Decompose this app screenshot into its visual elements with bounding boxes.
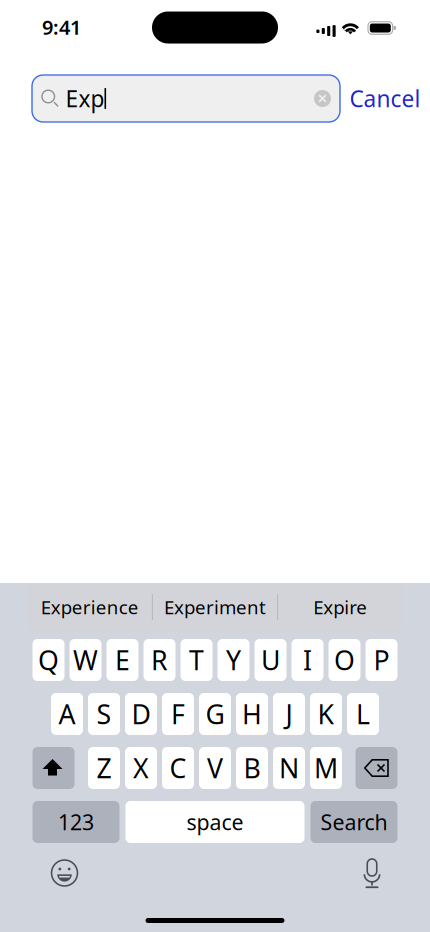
button[interactable]: E <box>106 639 138 681</box>
button[interactable]: M <box>310 747 342 789</box>
button[interactable]: K <box>310 693 342 735</box>
staticText: H <box>242 696 262 732</box>
staticText: D <box>131 696 150 732</box>
button[interactable]: L <box>347 693 379 735</box>
button[interactable]: Experience <box>28 584 152 630</box>
staticText: Experiment <box>164 595 266 619</box>
button[interactable]: U <box>254 639 286 681</box>
button[interactable]: D <box>125 693 157 735</box>
button[interactable]: O <box>328 639 360 681</box>
button[interactable]: J <box>273 693 305 735</box>
button[interactable]: A <box>51 693 83 735</box>
button[interactable]: S <box>88 693 120 735</box>
staticText: Expire <box>313 595 367 619</box>
button[interactable]: V <box>199 747 231 789</box>
button[interactable]: P <box>365 639 397 681</box>
staticText: 9:41 <box>42 14 81 40</box>
button[interactable]: Shift <box>32 747 74 789</box>
button[interactable]: Dictation <box>360 858 384 888</box>
staticText: S <box>96 696 111 732</box>
staticText: V <box>207 750 223 786</box>
button[interactable]: Cancel <box>340 75 430 122</box>
button[interactable]: Experiment <box>153 584 277 630</box>
staticText: Q <box>38 642 59 678</box>
staticText: Search <box>320 808 387 836</box>
staticText: Z <box>96 750 111 786</box>
staticText: U <box>261 642 280 678</box>
button[interactable]: Delete <box>355 747 397 789</box>
button[interactable]: space <box>125 801 304 843</box>
staticText: K <box>317 696 334 732</box>
button[interactable]: H <box>236 693 268 735</box>
button[interactable]: Exp <box>32 75 340 122</box>
staticText: A <box>58 696 75 732</box>
staticText: space <box>186 808 243 836</box>
staticText: X <box>133 750 149 786</box>
button[interactable]: Expire <box>278 584 402 630</box>
button[interactable]: X <box>125 747 157 789</box>
button[interactable]: R <box>143 639 175 681</box>
staticText: Y <box>226 642 241 678</box>
staticText: O <box>334 642 355 678</box>
button[interactable]: G <box>199 693 231 735</box>
button[interactable]: Q <box>32 639 64 681</box>
staticText: T <box>189 642 204 678</box>
staticText: 123 <box>58 808 94 836</box>
button[interactable]: T <box>180 639 212 681</box>
staticText: P <box>373 642 389 678</box>
staticText: E <box>115 642 130 678</box>
staticText: C <box>169 750 186 786</box>
staticText: I <box>303 642 312 678</box>
button[interactable]: Z <box>88 747 120 789</box>
button[interactable]: Emoji <box>51 859 78 886</box>
button[interactable]: C <box>162 747 194 789</box>
staticText: Experience <box>41 595 139 619</box>
button[interactable]: B <box>236 747 268 789</box>
button[interactable]: I <box>291 639 323 681</box>
staticText: B <box>243 750 260 786</box>
staticText: Cancel <box>349 83 420 113</box>
staticText: G <box>205 696 224 732</box>
button[interactable]: Y <box>217 639 249 681</box>
staticText: F <box>171 696 185 732</box>
button[interactable]: 123 <box>32 801 119 843</box>
staticText: W <box>73 642 98 678</box>
staticText: L <box>356 696 370 732</box>
button[interactable]: N <box>273 747 305 789</box>
staticText: R <box>151 642 168 678</box>
staticText: M <box>314 750 338 786</box>
button[interactable]: W <box>69 639 101 681</box>
staticText: N <box>279 750 299 786</box>
staticText: J <box>285 696 292 732</box>
button[interactable]: F <box>162 693 194 735</box>
staticText: Exp <box>65 83 104 113</box>
button[interactable]: Search <box>310 801 397 843</box>
